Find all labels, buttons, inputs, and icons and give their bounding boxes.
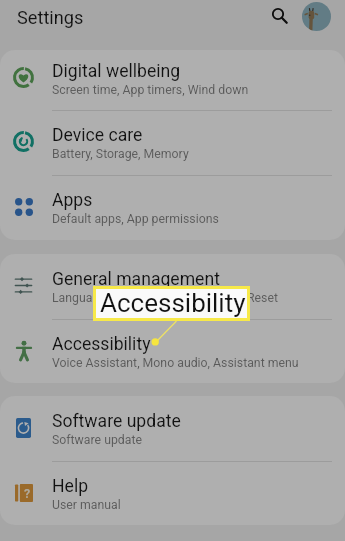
button[interactable]: Accessibility (0, 319, 345, 383)
staticText: Default apps, App permissions (52, 212, 219, 226)
staticText: ? (24, 486, 31, 501)
staticText: General management (52, 269, 220, 290)
button[interactable]: Software update (0, 396, 345, 461)
staticText: User manual (52, 498, 121, 512)
button[interactable]: General management (0, 254, 345, 319)
staticText: Screen time, App timers, Wind down (52, 83, 249, 97)
staticText: Software update (52, 411, 181, 432)
staticText: Apps (52, 190, 93, 211)
staticText: Digital wellbeing (52, 61, 181, 82)
staticText: Software update (52, 433, 143, 447)
button[interactable]: Account (302, 2, 331, 31)
staticText: Accessibility (100, 288, 246, 318)
button[interactable]: Apps (0, 175, 345, 240)
staticText: Voice Assistant, Mono audio, Assistant m… (52, 356, 299, 370)
staticText: Device care (52, 125, 143, 146)
staticText: Settings (17, 7, 84, 28)
staticText: Battery, Storage, Memory (52, 147, 189, 161)
staticText: Help (52, 476, 89, 497)
staticText: Accessibility (52, 334, 151, 355)
button[interactable]: Search (262, 0, 296, 32)
button[interactable]: Device care (0, 110, 345, 175)
button[interactable]: ? (0, 461, 345, 525)
button[interactable]: Digital wellbeing (0, 50, 345, 111)
staticText: Language and input, Date and time, Reset (52, 291, 278, 305)
